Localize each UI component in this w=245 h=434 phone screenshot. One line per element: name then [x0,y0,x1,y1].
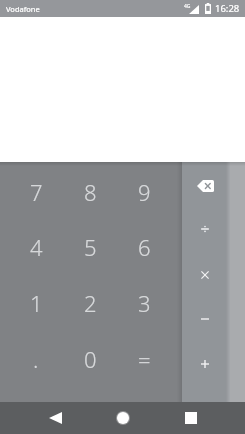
button[interactable]: Delete [182,164,228,208]
button[interactable]: 5 [63,219,117,275]
button[interactable]: 7 [9,164,63,220]
staticText: Vodafone [6,4,40,14]
button[interactable]: Multiply [182,253,228,297]
staticText: 4 [30,232,43,262]
staticText: 16:28 [215,2,240,15]
button[interactable]: = [117,331,171,387]
button[interactable]: 0 [63,331,117,387]
staticText: 2 [84,288,97,318]
staticText: 7 [30,177,43,207]
staticText: 8 [84,177,97,207]
staticText: 0 [84,344,97,374]
staticText: = [138,344,151,374]
button[interactable]: 6 [117,219,171,275]
staticText: . [33,344,39,374]
staticText: 9 [138,177,151,207]
button[interactable]: 8 [63,164,117,220]
button[interactable]: 3 [117,275,171,331]
staticText: 3 [138,288,151,318]
staticText: 5 [84,232,97,262]
staticText: 4G [184,3,191,10]
staticText: 6 [138,232,151,262]
button[interactable]: 9 [117,164,171,220]
button[interactable]: Home [102,402,143,434]
button[interactable]: 4 [9,219,63,275]
button[interactable]: Divide [182,207,228,251]
button[interactable]: Subtract [182,297,228,341]
button[interactable]: Back [35,402,76,434]
staticText: 1 [30,288,43,318]
button[interactable]: 2 [63,275,117,331]
button[interactable]: Recent apps [170,402,211,434]
button[interactable]: 1 [9,275,63,331]
button[interactable]: Add [182,342,228,386]
